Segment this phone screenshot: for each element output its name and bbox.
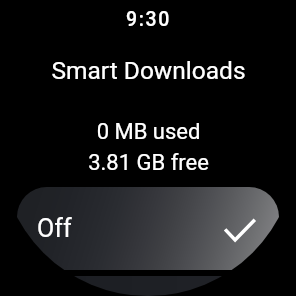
staticText: 9:30 — [126, 8, 171, 31]
other: Selected — [223, 213, 254, 244]
button[interactable]: Off — [17, 187, 279, 270]
staticText: Off — [37, 214, 72, 243]
staticText: 0 MB used 3.81 GB free — [88, 119, 209, 175]
button[interactable] — [17, 276, 279, 296]
staticText: Smart Downloads — [51, 56, 246, 85]
